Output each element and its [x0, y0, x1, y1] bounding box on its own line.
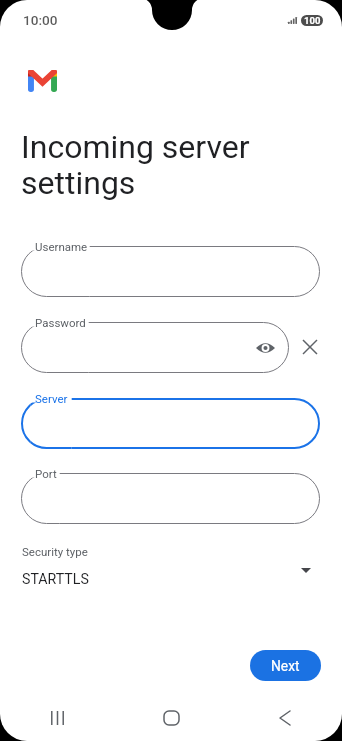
staticText: Next: [271, 658, 300, 674]
button[interactable]: Back: [228, 695, 342, 741]
staticText: Incoming server settings: [21, 128, 250, 202]
staticText: STARTTLS: [22, 571, 89, 588]
button[interactable]: Home: [114, 695, 228, 741]
button[interactable]: Clear password: [296, 333, 324, 361]
staticText: Username: [35, 240, 88, 253]
button[interactable]: Password: [21, 322, 289, 373]
button[interactable]: Recent apps: [0, 695, 114, 741]
staticText: Security type: [22, 545, 88, 558]
staticText: 10:00: [23, 12, 58, 28]
button[interactable]: Username: [21, 246, 320, 297]
staticText: 100: [304, 15, 321, 26]
button[interactable]: Server: [21, 398, 320, 449]
staticText: Password: [35, 316, 86, 329]
button[interactable]: Next: [250, 650, 321, 681]
staticText: Port: [35, 467, 57, 480]
button[interactable]: Port: [21, 473, 320, 524]
staticText: Server: [35, 392, 68, 405]
button[interactable]: Security type: [21, 545, 320, 585]
button[interactable]: Show password: [252, 335, 278, 361]
